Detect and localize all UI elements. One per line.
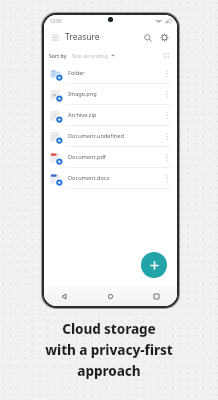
button[interactable]: Document.pdf <box>44 147 177 168</box>
button[interactable]: More options for Document.docx <box>161 173 172 184</box>
button[interactable]: Archive.zip <box>44 105 177 126</box>
staticText: 12:00 <box>50 18 62 24</box>
button[interactable]: More options for Document.undefined <box>161 131 172 142</box>
button[interactable]: Back <box>58 290 71 303</box>
button[interactable]: More options for Image.png <box>161 89 172 100</box>
staticText: Cloud storage <box>62 320 156 338</box>
staticText: approach <box>77 362 141 380</box>
button[interactable]: Recent apps <box>150 290 163 303</box>
staticText: Size ascending <box>72 52 108 59</box>
button[interactable]: Document.undefined <box>44 126 177 147</box>
button[interactable]: Folder <box>44 63 177 84</box>
button[interactable]: Add file <box>141 252 167 278</box>
button[interactable]: More options for Document.pdf <box>161 152 172 163</box>
button[interactable]: More options for Archive.zip <box>161 110 172 121</box>
staticText: Sort by <box>49 52 67 59</box>
button[interactable]: Size ascending <box>71 51 116 60</box>
staticText: with a privacy-first <box>45 341 173 359</box>
button[interactable]: Search <box>140 30 155 45</box>
button[interactable]: Open navigation menu <box>48 30 62 44</box>
button[interactable]: Settings <box>157 30 172 45</box>
button[interactable]: Change view layout <box>161 50 172 61</box>
staticText: Document.undefined <box>68 132 161 140</box>
staticText: Document.docx <box>68 174 161 182</box>
staticText: Image.png <box>68 90 161 98</box>
staticText: Treasure <box>65 31 100 43</box>
button[interactable]: Document.docx <box>44 168 177 189</box>
staticText: Archive.zip <box>68 111 161 119</box>
button[interactable]: Home <box>104 290 117 303</box>
staticText: Document.pdf <box>68 153 161 161</box>
button[interactable]: More options for Folder <box>161 68 172 79</box>
staticText: Folder <box>68 69 161 77</box>
button[interactable]: Image.png <box>44 84 177 105</box>
